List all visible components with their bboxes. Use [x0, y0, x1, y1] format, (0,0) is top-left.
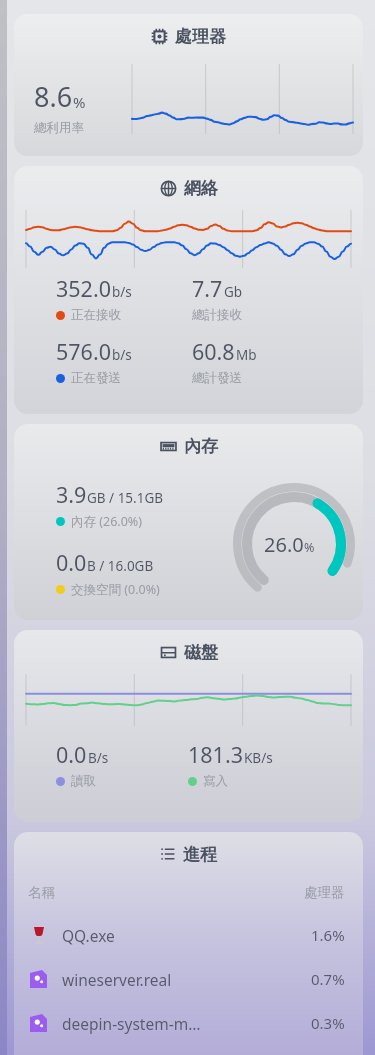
staticText: %: [304, 539, 315, 556]
staticText: 7.7: [192, 274, 223, 303]
button[interactable]: 磁盤: [14, 630, 363, 822]
staticText: wineserver.real: [62, 969, 311, 990]
staticText: 1.6%: [311, 925, 345, 945]
staticText: 正在接收: [71, 307, 121, 323]
staticText: 60.8: [192, 337, 235, 366]
staticText: 總計接收: [192, 307, 242, 323]
staticText: B/s: [88, 749, 109, 767]
staticText: 名稱: [28, 884, 304, 901]
staticText: b/s: [112, 346, 132, 364]
staticText: 0.0: [56, 740, 87, 769]
staticText: b/s: [112, 283, 132, 301]
staticText: Gb: [224, 283, 243, 301]
staticText: 交換空間 (0.0%): [71, 581, 160, 598]
button[interactable]: QQ.exe: [28, 913, 345, 957]
staticText: 0.0: [56, 548, 87, 577]
staticText: B / 16.0GB: [87, 557, 154, 575]
staticText: 寫入: [203, 773, 228, 789]
staticText: KB/s: [244, 749, 273, 767]
staticText: 網絡: [184, 178, 218, 199]
button[interactable]: 網絡: [14, 166, 363, 414]
staticText: 讀取: [71, 773, 96, 789]
staticText: 總利用率: [34, 120, 84, 136]
staticText: 26.0: [264, 531, 304, 558]
staticText: 8.6: [34, 78, 73, 115]
staticText: GB / 15.1GB: [87, 489, 164, 507]
staticText: 內存: [184, 436, 218, 457]
staticText: 3.9: [56, 480, 87, 509]
staticText: 進程: [183, 844, 217, 865]
staticText: 磁盤: [184, 642, 218, 663]
button[interactable]: 進程: [14, 832, 363, 1055]
button[interactable]: 內存: [14, 424, 363, 620]
staticText: 正在發送: [71, 370, 121, 386]
staticText: %: [73, 92, 86, 112]
staticText: 0.3%: [311, 1013, 345, 1033]
button[interactable]: wineserver.real: [28, 957, 345, 1001]
staticText: 總計發送: [192, 370, 242, 386]
staticText: 內存 (26.0%): [71, 513, 142, 530]
staticText: 處理器: [175, 26, 226, 47]
staticText: deepin-system-m…: [62, 1013, 311, 1034]
staticText: 處理器: [304, 884, 345, 901]
staticText: Mb: [236, 346, 257, 364]
staticText: QQ.exe: [62, 925, 311, 946]
button[interactable]: 處理器: [14, 14, 363, 156]
staticText: 0.7%: [311, 969, 345, 989]
staticText: 576.0: [56, 337, 111, 366]
button[interactable]: deepin-system-m…: [28, 1001, 345, 1045]
staticText: 352.0: [56, 274, 111, 303]
staticText: 181.3: [188, 740, 243, 769]
